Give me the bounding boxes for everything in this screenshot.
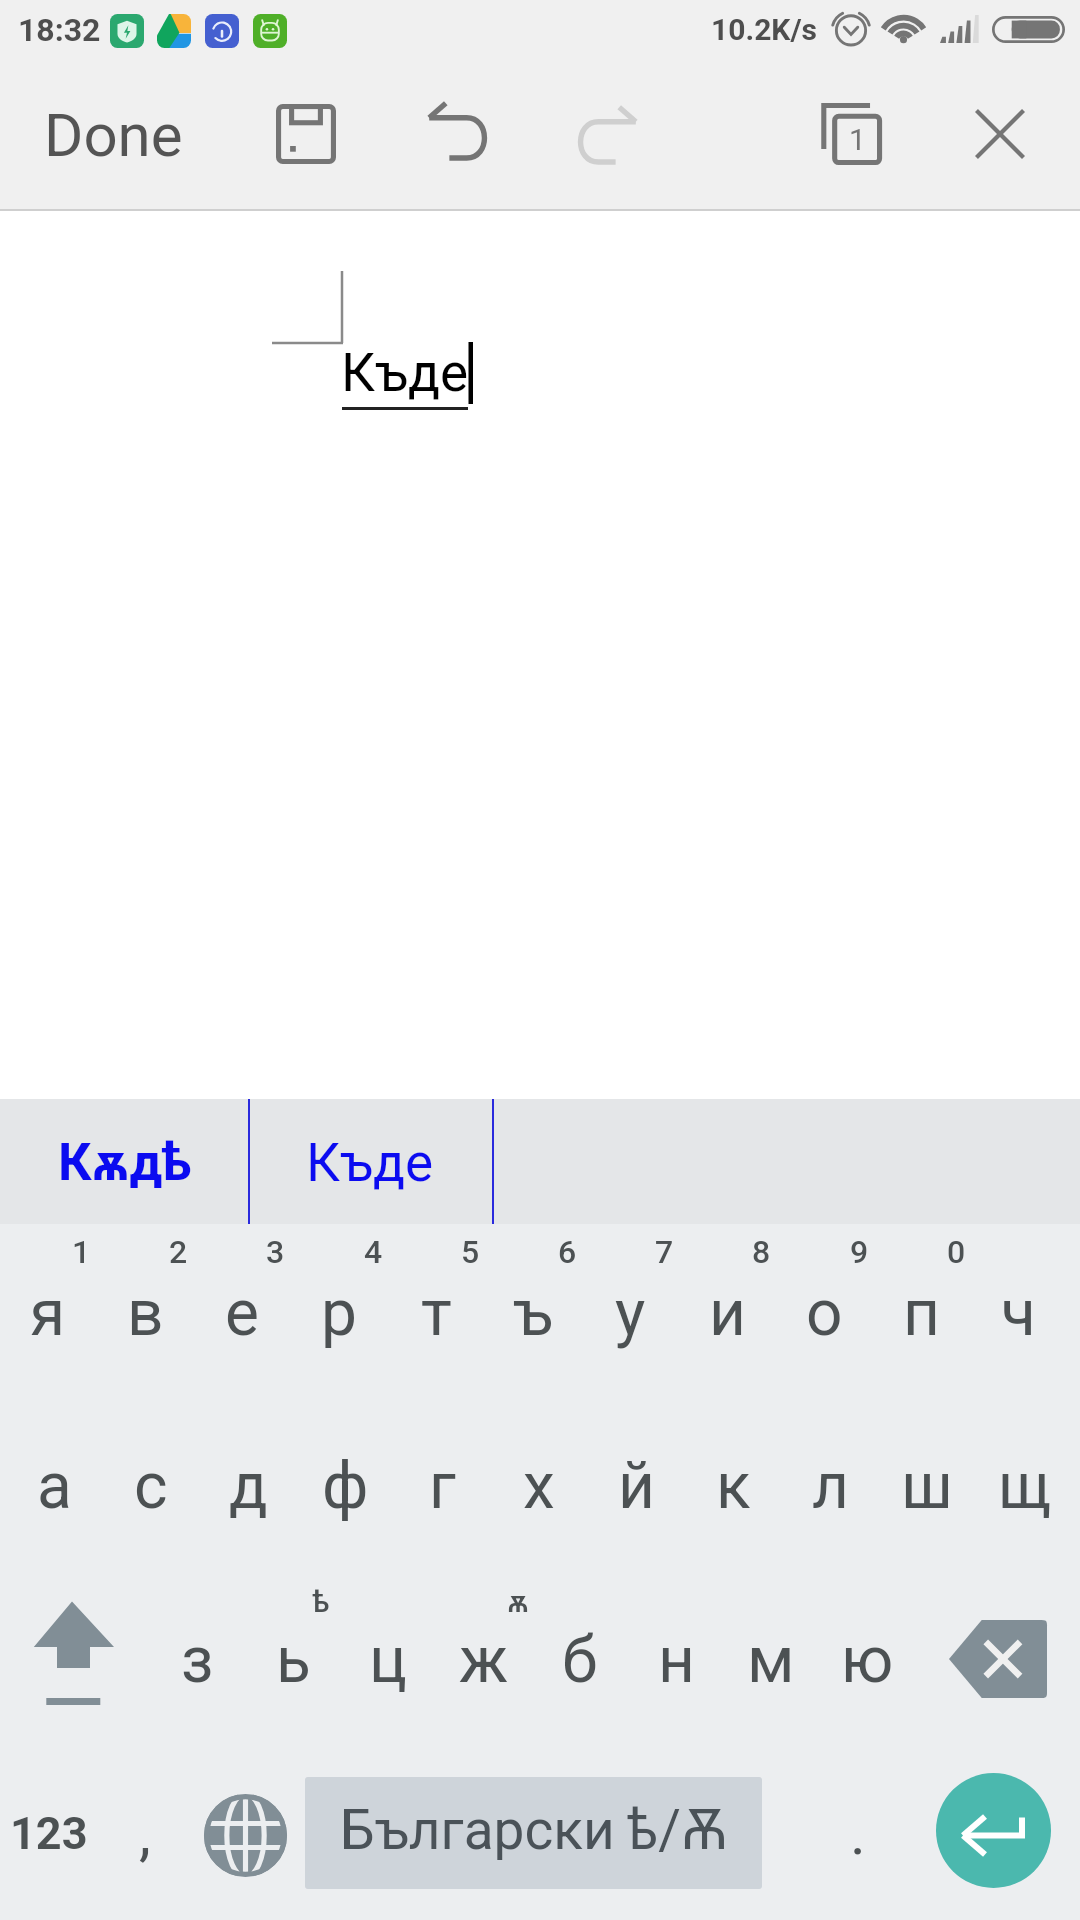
button[interactable]: ф (297, 1441, 393, 1531)
button[interactable]: Shift (0, 1594, 148, 1744)
staticText: 18:32 (18, 11, 101, 49)
staticText: ш (901, 1449, 953, 1524)
staticText: 3 (266, 1233, 285, 1271)
staticText: 8 (752, 1233, 771, 1271)
staticText: ю (841, 1623, 894, 1698)
button[interactable]: ж (436, 1615, 532, 1705)
button[interactable]: 123 (0, 1769, 112, 1909)
button[interactable]: Къде (251, 1099, 493, 1224)
staticText: ѫ (507, 1584, 529, 1619)
staticText: Кѫдѣ (58, 1132, 192, 1193)
button[interactable]: а (6, 1441, 102, 1531)
staticText: г (429, 1449, 456, 1524)
staticText: ф (322, 1449, 369, 1524)
button[interactable]: м (723, 1615, 819, 1705)
staticText: щ (998, 1449, 1051, 1524)
staticText: е (225, 1276, 259, 1351)
button[interactable]: Undo (398, 70, 518, 211)
staticText: , (139, 1798, 151, 1868)
staticText: т (421, 1276, 452, 1351)
button[interactable]: ь (245, 1615, 341, 1705)
button[interactable]: Done (0, 70, 230, 211)
staticText: 10.2K/s (711, 12, 817, 47)
staticText: ч (1001, 1276, 1036, 1351)
button[interactable]: ю (819, 1615, 915, 1705)
button[interactable]: в (97, 1268, 193, 1358)
button[interactable]: з (149, 1615, 245, 1705)
staticText: ц (369, 1623, 407, 1698)
button[interactable]: . (800, 1769, 916, 1909)
button[interactable]: й (588, 1441, 684, 1531)
button[interactable]: г (394, 1441, 490, 1531)
button[interactable]: Redo (547, 70, 667, 211)
staticText: 1 (72, 1233, 91, 1271)
button[interactable]: Save (246, 70, 366, 211)
button[interactable]: к (685, 1441, 781, 1531)
staticText: с (134, 1449, 168, 1524)
button[interactable]: д (200, 1441, 296, 1531)
staticText: у (615, 1276, 646, 1351)
button[interactable]: ч (970, 1268, 1066, 1358)
staticText: 1 (849, 122, 866, 157)
staticText: л (812, 1449, 849, 1524)
staticText: я (30, 1276, 66, 1351)
staticText: ъ (513, 1276, 553, 1351)
staticText: 123 (10, 1807, 88, 1860)
button[interactable]: Кѫдѣ (0, 1099, 249, 1224)
button[interactable]: с (103, 1441, 199, 1531)
staticText: п (903, 1276, 940, 1351)
staticText: Къде (341, 342, 469, 404)
staticText: . (850, 1798, 866, 1868)
staticText: Български ѣ/Ѫ (340, 1798, 728, 1862)
button[interactable]: у (582, 1268, 678, 1358)
staticText: ь (276, 1623, 311, 1698)
button[interactable]: Change language (186, 1769, 304, 1909)
button[interactable]: и (679, 1268, 775, 1358)
staticText: 0 (947, 1233, 966, 1271)
button[interactable]: е (194, 1268, 290, 1358)
staticText: 9 (850, 1233, 869, 1271)
staticText: ж (459, 1623, 509, 1698)
staticText: о (806, 1276, 843, 1351)
staticText: 6 (558, 1233, 577, 1271)
staticText: р (321, 1276, 357, 1351)
button[interactable]: Tabs (795, 70, 915, 211)
button[interactable]: , (112, 1769, 186, 1909)
button[interactable]: б (532, 1615, 628, 1705)
button[interactable]: Български ѣ/Ѫ (305, 1777, 762, 1889)
staticText: и (709, 1276, 746, 1351)
button[interactable]: ц (340, 1615, 436, 1705)
staticText: к (716, 1449, 751, 1524)
button[interactable]: т (388, 1268, 484, 1358)
button[interactable]: п (873, 1268, 969, 1358)
staticText: в (127, 1276, 164, 1351)
staticText: х (523, 1449, 555, 1524)
button[interactable]: х (491, 1441, 587, 1531)
staticText: й (618, 1449, 655, 1524)
staticText: Къде (306, 1132, 434, 1194)
button[interactable]: я (0, 1268, 96, 1358)
button[interactable]: ш (879, 1441, 975, 1531)
button[interactable]: Backspace (949, 1620, 1047, 1698)
staticText: Done (44, 100, 183, 170)
staticText: д (229, 1449, 268, 1524)
staticText: н (658, 1623, 695, 1698)
staticText: 7 (655, 1233, 674, 1271)
button[interactable]: щ (976, 1441, 1072, 1531)
button[interactable]: о (776, 1268, 872, 1358)
button[interactable]: л (782, 1441, 878, 1531)
staticText: 2 (169, 1233, 188, 1271)
button[interactable]: Close (940, 70, 1060, 211)
button[interactable]: н (628, 1615, 724, 1705)
button[interactable]: Enter (936, 1773, 1051, 1888)
staticText: 5 (461, 1233, 480, 1271)
staticText: м (747, 1623, 795, 1698)
button[interactable]: ъ (485, 1268, 581, 1358)
staticText: а (37, 1449, 72, 1524)
staticText: з (181, 1623, 214, 1698)
staticText: 4 (364, 1233, 383, 1271)
staticText: ѣ (313, 1584, 330, 1619)
button[interactable]: р (291, 1268, 387, 1358)
staticText: б (562, 1623, 598, 1698)
